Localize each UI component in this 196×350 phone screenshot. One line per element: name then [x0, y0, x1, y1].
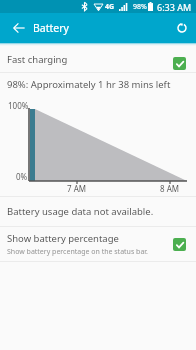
- button[interactable]: Back: [0, 13, 31, 43]
- staticText: 4G: [105, 2, 115, 12]
- button[interactable]: Battery usage data not available.: [0, 197, 196, 226]
- staticText: Show battery percentage on the status ba…: [7, 247, 148, 257]
- button[interactable]: Fast charging: [0, 43, 196, 72]
- staticText: 7 AM: [67, 183, 87, 194]
- button[interactable]: Show battery percentage: [0, 227, 196, 261]
- staticText: 8 AM: [160, 183, 180, 194]
- staticText: 6:33 AM: [157, 1, 192, 13]
- staticText: 98%: [133, 2, 147, 12]
- staticText: Battery usage data not available.: [7, 205, 154, 218]
- button[interactable]: Refresh: [168, 13, 196, 43]
- staticText: 100%: [8, 100, 29, 111]
- staticText: 0%: [16, 171, 28, 182]
- staticText: Fast charging: [7, 53, 68, 66]
- staticText: 98%: Approximately 1 hr 38 mins left: [7, 78, 171, 91]
- staticText: Battery: [33, 21, 69, 35]
- staticText: Show battery percentage: [7, 232, 119, 245]
